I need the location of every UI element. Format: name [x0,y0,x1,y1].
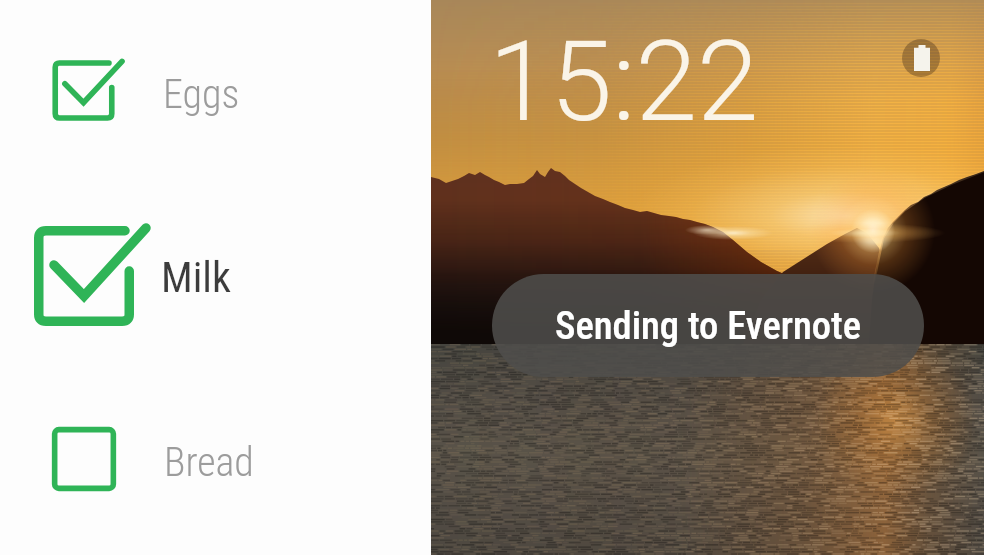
staticText: Sending to Evernote [555,303,862,348]
button[interactable]: Milk [14,206,154,346]
button[interactable]: Eggs [40,48,127,133]
staticText: Eggs [163,71,240,118]
staticText: Bread [164,439,254,486]
staticText: 15:22 [489,17,759,147]
staticText: Milk [161,253,231,302]
button[interactable]: Battery [902,39,940,77]
button[interactable]: Bread [39,414,129,504]
button[interactable]: Sending to Evernote [492,274,924,377]
